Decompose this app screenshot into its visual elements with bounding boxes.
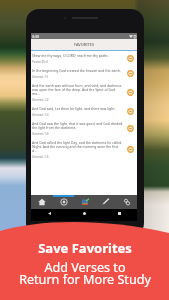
button[interactable]: Home [31,195,53,209]
staticText: And God saw the light, that it was good:… [32,121,123,130]
staticText: FAVORITES [74,42,95,47]
staticText: In the beginning God created the heaven … [32,68,121,73]
staticText: 3:39 [32,34,40,39]
button[interactable]: Settings [116,195,137,209]
button[interactable]: Remove favorite [127,108,134,115]
staticText: Add Verses to Return for More Study [19,259,151,288]
button[interactable]: Remove favorite [127,55,134,62]
staticText: Genesis 1:3 [32,113,49,117]
staticText: Genesis 1:4 [32,132,49,136]
staticText: And the earth was without form, and void… [32,83,123,96]
button[interactable]: Remove favorite [127,125,134,132]
button[interactable]: Highlight [95,195,116,209]
button[interactable]: In the beginning God created the heaven … [31,66,137,81]
button[interactable]: Remove favorite [127,70,134,77]
staticText: And God called the light Day, and the da… [32,140,123,153]
staticText: Genesis 1:1 [32,75,49,79]
button[interactable]: Remove favorite [127,89,134,96]
button[interactable]: And God said, Let there be light: and th… [31,104,137,119]
button[interactable]: Bible [74,195,95,209]
button[interactable]: Remove favorite [127,146,134,153]
button[interactable]: And God called the light Day, and the da… [31,138,137,161]
staticText: Genesis 1:5 [32,155,49,159]
button[interactable]: And God saw the light, that it was good:… [31,119,137,138]
button[interactable]: Back [31,209,67,218]
staticText: Psalm 25:4 [32,60,48,64]
button[interactable]: Home [67,209,102,218]
staticText: Shew me thy ways, O LORD; teach me thy p… [32,53,109,58]
button[interactable]: Explore [53,195,74,209]
button[interactable]: Shew me thy ways, O LORD; teach me thy p… [31,51,137,66]
staticText: Genesis 1:2 [32,98,49,102]
staticText: Save Favorites [38,239,132,257]
button[interactable]: Recents [102,209,137,218]
button[interactable]: And the earth was without form, and void… [31,81,137,104]
staticText: And God said, Let there be light: and th… [32,106,116,111]
